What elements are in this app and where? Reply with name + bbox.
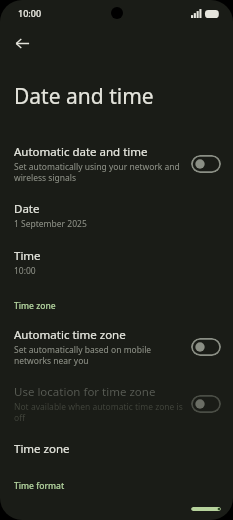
staticText: Time format bbox=[14, 480, 65, 492]
button[interactable]: Toggle bbox=[191, 338, 221, 356]
button[interactable]: Back bbox=[8, 29, 36, 57]
staticText: Automatic time zone bbox=[14, 327, 126, 343]
staticText: Automatic date and time bbox=[14, 144, 148, 160]
button[interactable]: Time bbox=[0, 239, 233, 286]
button[interactable]: Automatic time zone bbox=[0, 318, 233, 375]
staticText: Time zone bbox=[14, 441, 70, 457]
staticText: Date bbox=[14, 201, 40, 217]
staticText: Set automatically based on mobile networ… bbox=[14, 344, 183, 366]
button[interactable]: Time zone bbox=[0, 432, 233, 466]
staticText: Not available when automatic time zone i… bbox=[14, 401, 183, 423]
staticText: Set automatically using your network and… bbox=[14, 161, 183, 183]
button[interactable]: Date bbox=[0, 192, 233, 239]
button[interactable]: Use 24-hour format bbox=[0, 498, 233, 520]
button[interactable]: Toggle bbox=[191, 155, 221, 173]
button[interactable]: Toggle bbox=[191, 507, 221, 511]
staticText: Use location for time zone bbox=[14, 384, 156, 400]
staticText: 1 September 2025 bbox=[14, 218, 87, 230]
button[interactable]: Toggle bbox=[191, 395, 221, 413]
staticText: Time bbox=[14, 248, 41, 264]
staticText: 10:00 bbox=[14, 265, 36, 277]
button[interactable]: Use location for time zone bbox=[0, 375, 233, 432]
button[interactable]: Automatic date and time bbox=[0, 135, 233, 192]
staticText: 10:00 bbox=[18, 7, 42, 19]
staticText: Date and time bbox=[14, 82, 154, 111]
staticText: Time zone bbox=[14, 300, 56, 312]
